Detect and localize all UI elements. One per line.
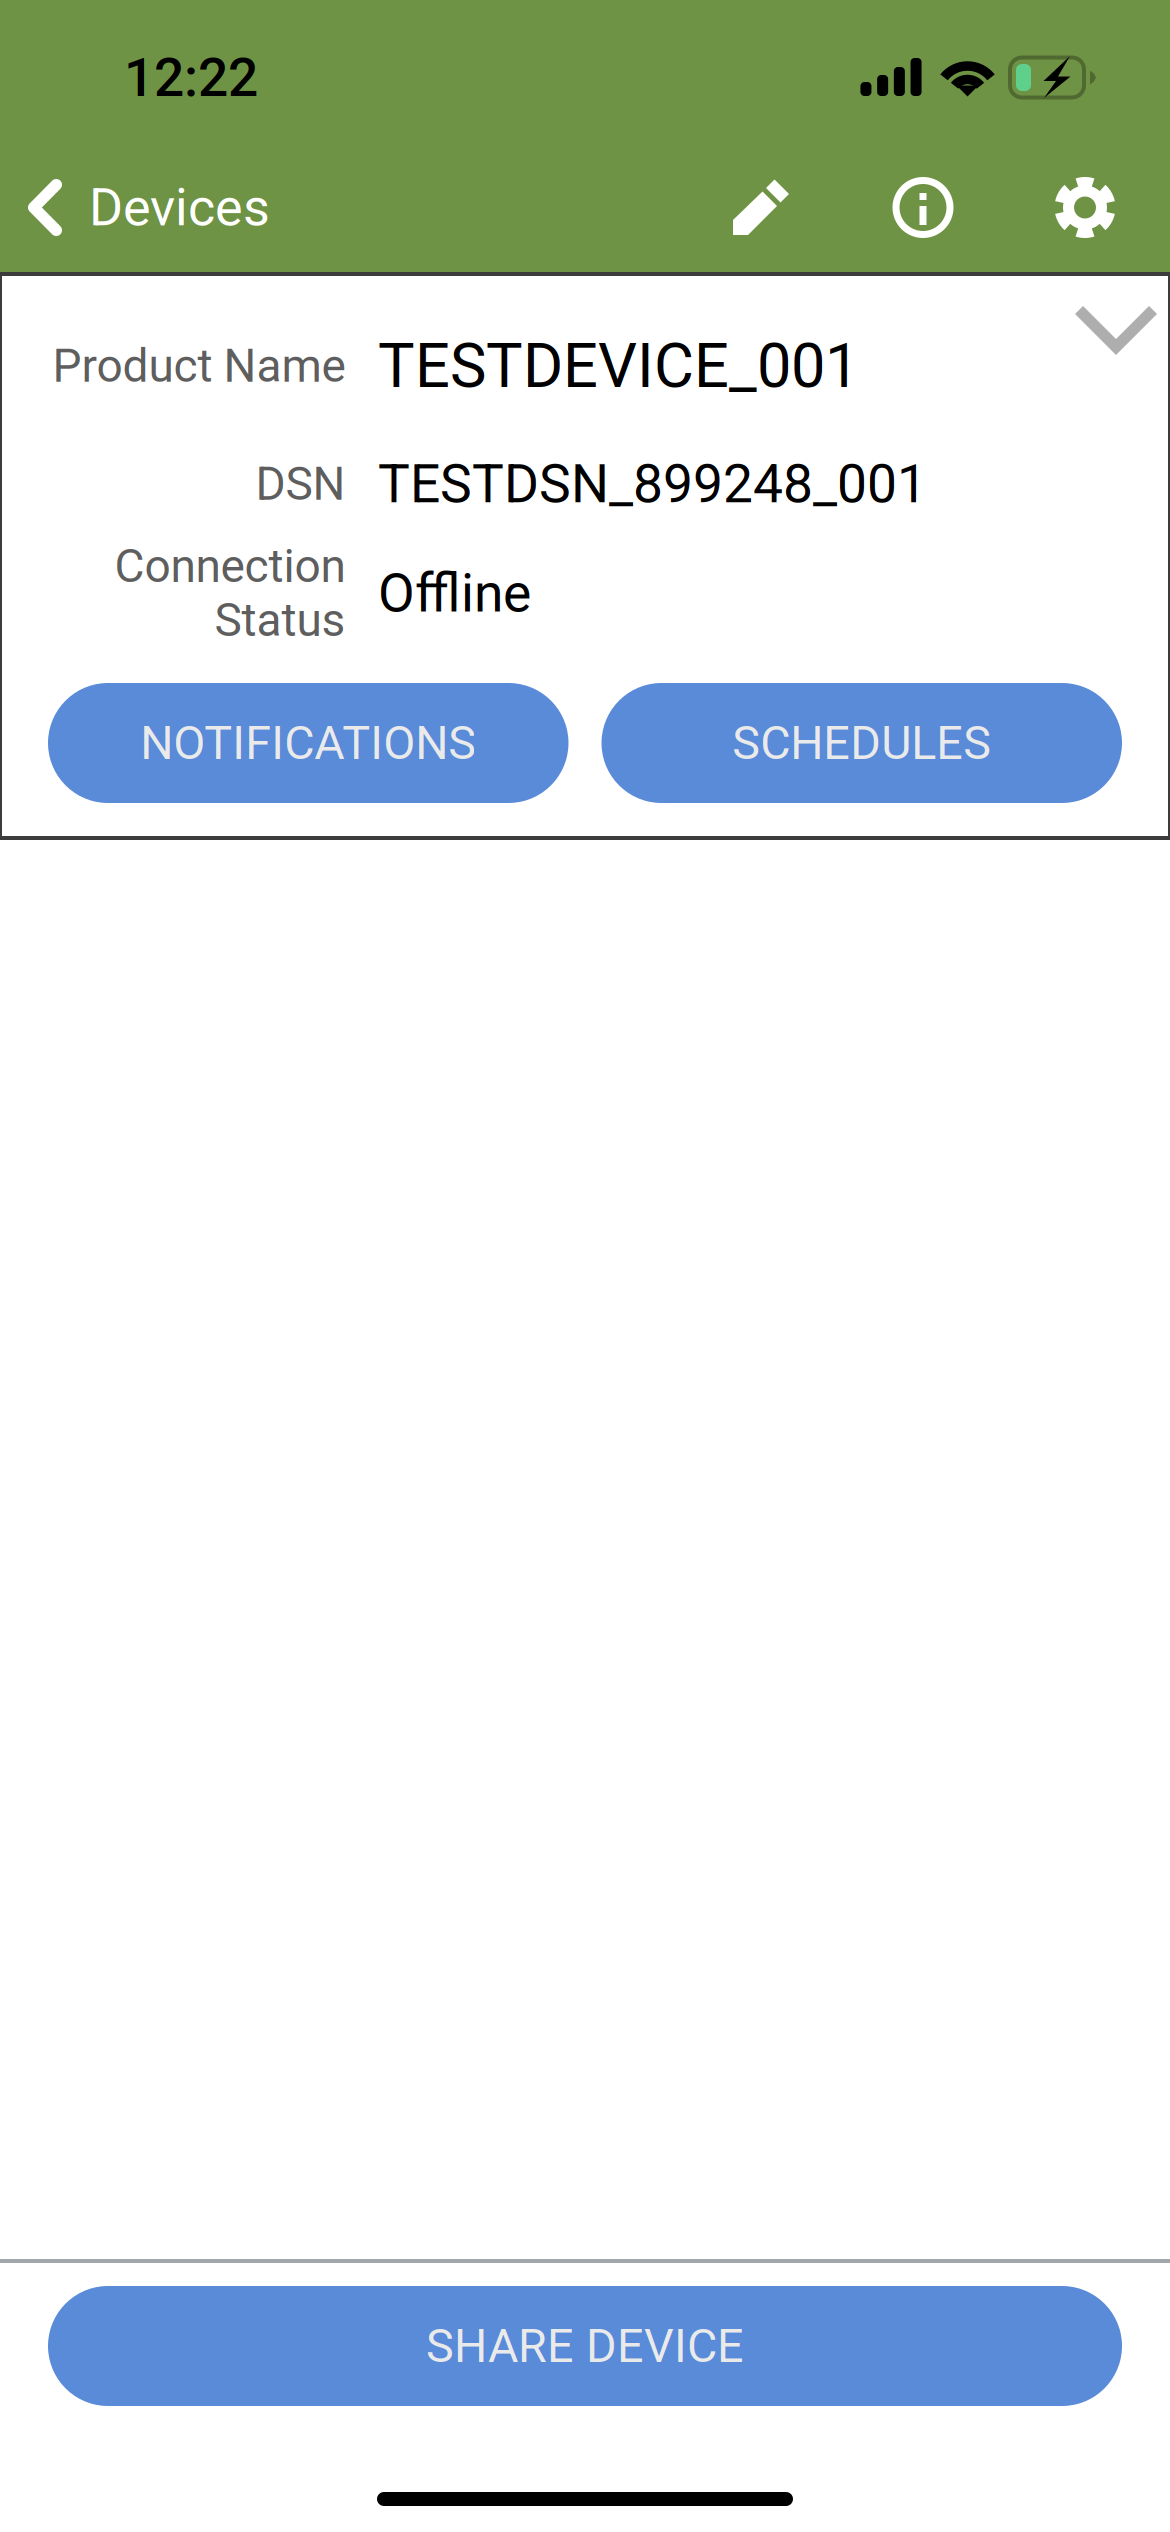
staticText: 12:22 xyxy=(124,46,258,109)
staticText: NOTIFICATIONS xyxy=(140,716,476,770)
button[interactable]: Settings xyxy=(1030,141,1140,274)
staticText: Devices xyxy=(89,177,270,238)
button[interactable]: SCHEDULES xyxy=(601,683,1122,803)
button[interactable]: Devices xyxy=(0,141,294,274)
staticText: SCHEDULES xyxy=(732,716,991,770)
staticText: Connection Status xyxy=(114,539,345,647)
button[interactable]: NOTIFICATIONS xyxy=(48,683,568,803)
button[interactable]: SHARE DEVICE xyxy=(0,2286,1170,2406)
button[interactable]: Info xyxy=(868,141,978,274)
button[interactable]: Edit xyxy=(706,141,816,274)
staticText: TESTDSN_899248_001 xyxy=(378,453,927,515)
staticText: SHARE DEVICE xyxy=(426,2319,744,2373)
staticText: Product Name xyxy=(52,339,345,393)
staticText: DSN xyxy=(255,457,345,511)
staticText: Offline xyxy=(378,562,531,624)
staticText: TESTDEVICE_001 xyxy=(378,330,859,402)
